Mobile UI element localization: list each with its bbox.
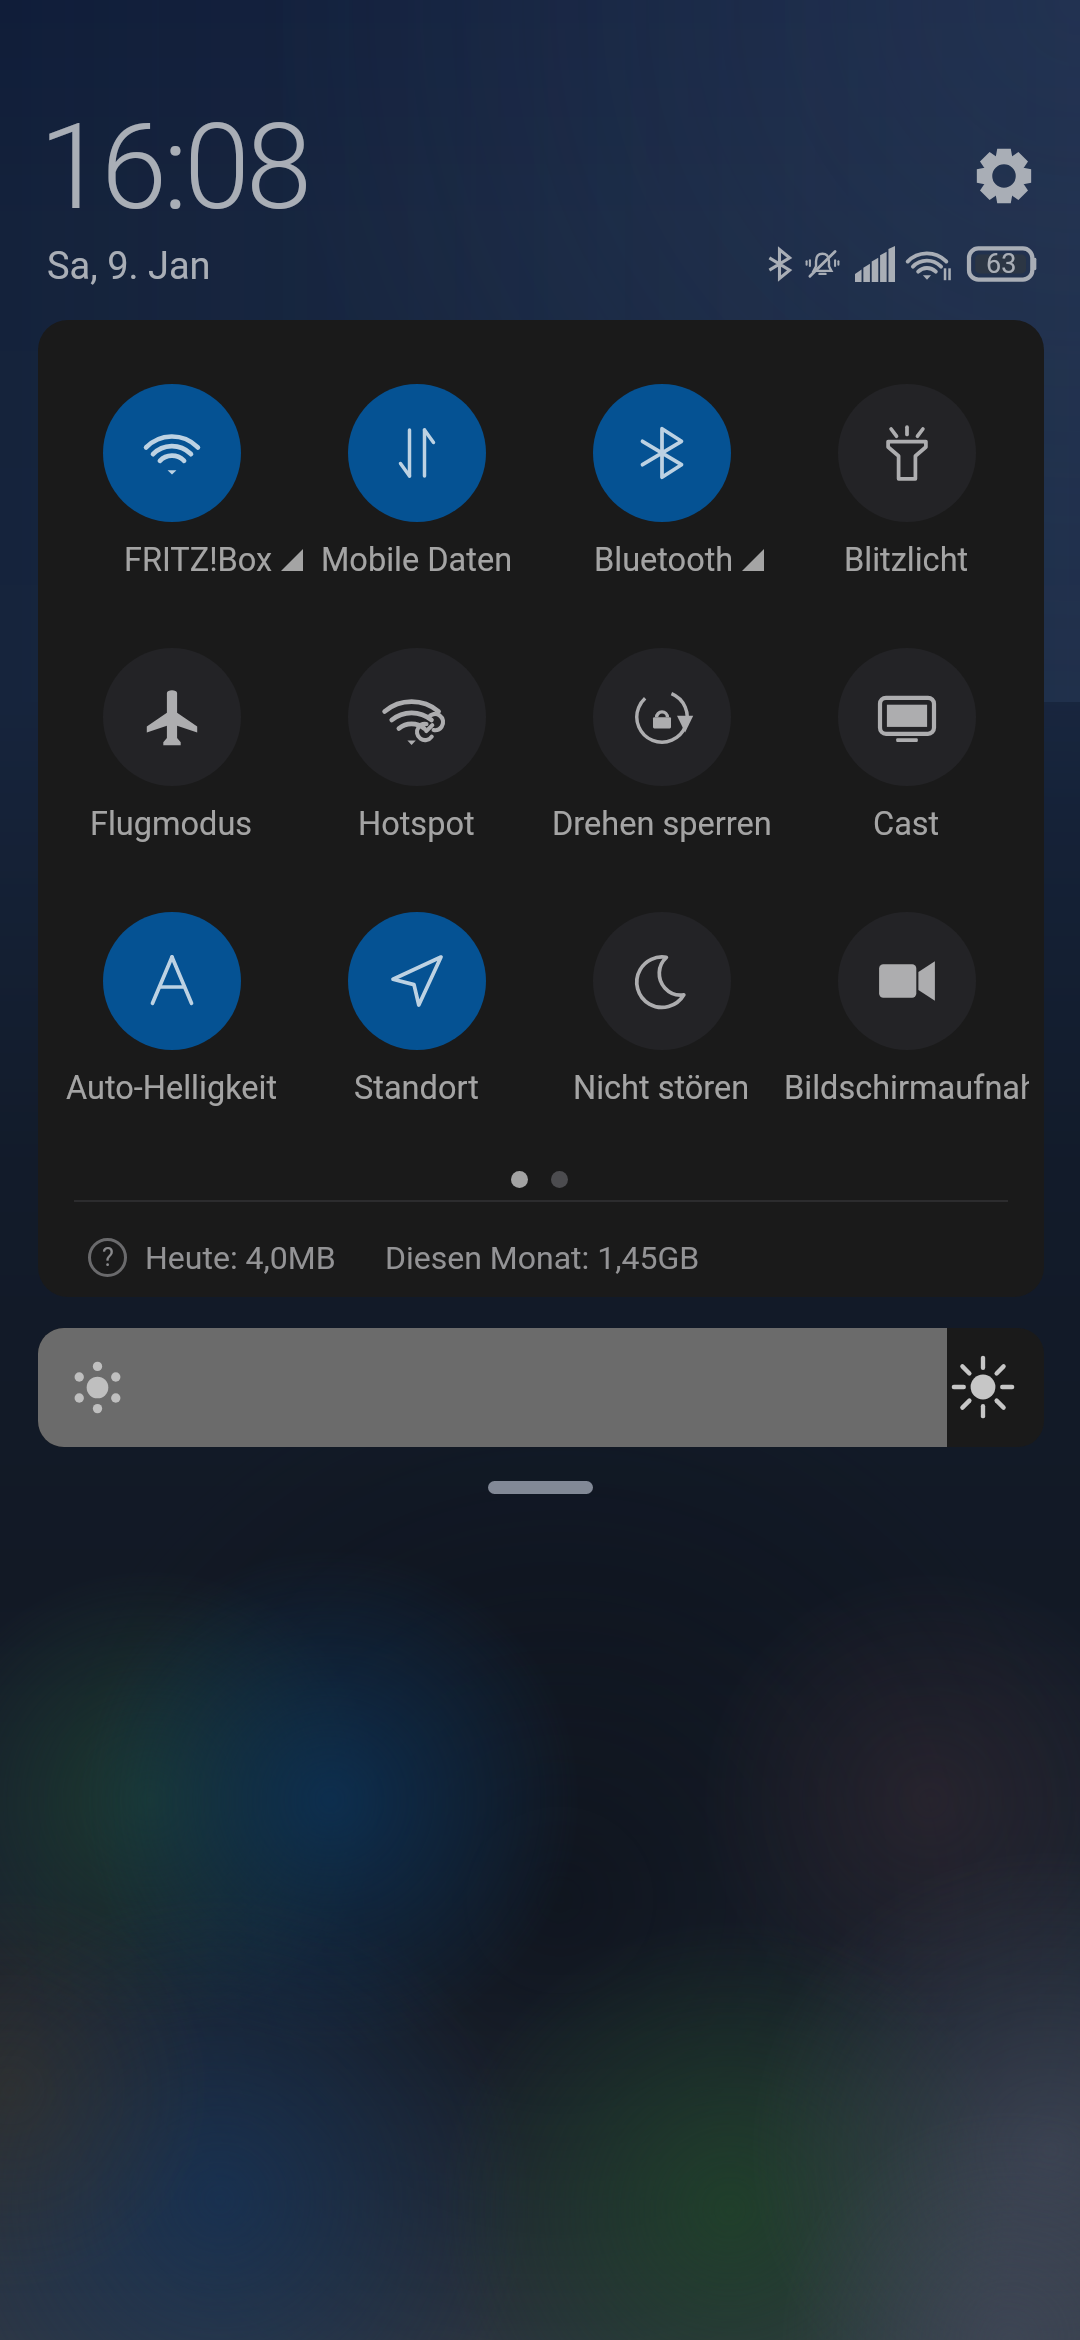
staticText: Nicht stören: [573, 1069, 750, 1107]
staticText: Auto-Helligkeit: [66, 1069, 278, 1107]
staticText: Hotspot: [358, 805, 475, 843]
staticText: FRITZ!Box: [124, 541, 273, 579]
staticText: Diesen Monat: 1,45GB: [385, 1239, 700, 1277]
staticText: Drehen sperren: [552, 805, 772, 843]
button[interactable]: [539, 866, 784, 1116]
button[interactable]: [49, 338, 294, 588]
staticText: Flugmodus: [90, 805, 253, 843]
staticText: ?: [102, 1243, 114, 1272]
button[interactable]: [294, 866, 539, 1116]
staticText: Bluetooth: [594, 541, 734, 579]
button[interactable]: [294, 602, 539, 852]
button[interactable]: Settings: [960, 132, 1048, 220]
staticText: Standort: [354, 1069, 479, 1107]
staticText: Heute: 4,0MB: [145, 1239, 336, 1277]
staticText: Bildschirmaufnahme: [784, 1069, 1029, 1107]
button[interactable]: [294, 338, 539, 588]
button[interactable]: [784, 338, 1029, 588]
button[interactable]: [539, 338, 784, 588]
button[interactable]: [49, 602, 294, 852]
button[interactable]: [539, 602, 784, 852]
staticText: 63: [986, 248, 1017, 280]
staticText: 16:08: [39, 98, 309, 237]
button[interactable]: ?: [38, 1214, 1044, 1297]
staticText: Blitzlicht: [844, 541, 969, 579]
button[interactable]: [49, 866, 294, 1116]
button[interactable]: [784, 866, 1029, 1116]
staticText: Mobile Daten: [321, 541, 513, 579]
button[interactable]: Brightness: [38, 1328, 1044, 1447]
staticText: Cast: [873, 805, 940, 843]
button[interactable]: [784, 602, 1029, 852]
staticText: Sa, 9. Jan: [47, 244, 211, 289]
